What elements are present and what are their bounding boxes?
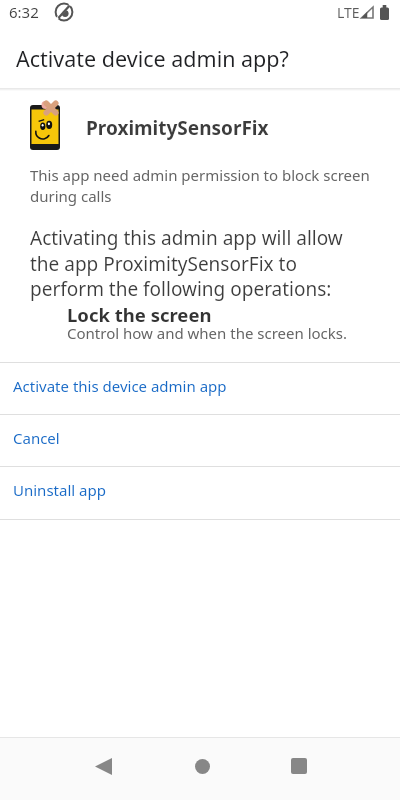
button[interactable] [185,735,219,797]
button[interactable]: Activate this device admin app [0,363,400,414]
staticText: Control how and when the screen locks. [67,323,347,343]
staticText: 6:32 [9,2,39,22]
staticText: Uninstall app [13,480,106,500]
button[interactable]: Uninstall app [0,467,400,519]
staticText: Lock the screen [67,302,212,327]
staticText: ProximitySensorFix [86,115,269,141]
button[interactable] [282,735,316,797]
staticText: Activate device admin app? [16,44,289,73]
button[interactable] [86,735,120,797]
staticText: LTE [337,3,360,22]
staticText: Activate this device admin app [13,376,227,396]
staticText: This app need admin permission to block … [30,165,370,207]
staticText: Activating this admin app will allow the… [30,225,343,301]
button[interactable]: Cancel [0,415,400,466]
staticText: Cancel [13,428,60,448]
